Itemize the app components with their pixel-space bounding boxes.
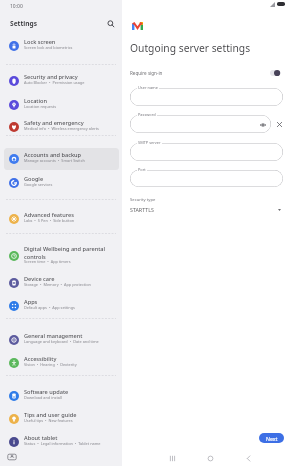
button[interactable]: Show password [258,120,267,129]
staticText: 10:00 [10,3,23,10]
staticText: Port [138,167,146,172]
staticText: Tips and user guide [24,411,77,419]
button[interactable] [130,88,283,106]
button[interactable]: STARTTLS [127,204,289,215]
button[interactable]: Software update [4,385,119,407]
staticText: Digital Wellbeing and parental controls [24,245,106,260]
button[interactable]: General management [4,329,119,351]
button[interactable]: About tablet [4,431,119,453]
staticText: Software update [24,388,69,396]
staticText: SMTP server [138,140,161,145]
staticText: Status • Legal information • Tablet name [24,441,101,446]
button[interactable]: Apps [4,295,119,317]
staticText: Language and keyboard • Date and time [24,339,99,344]
button[interactable]: Clear [274,119,284,129]
button[interactable]: Require sign-in [270,70,280,76]
button[interactable]: Location [4,94,119,116]
button[interactable]: Advanced features [4,208,119,230]
staticText: Screen lock and biometrics [24,45,73,50]
staticText: Screen time • App timers [24,259,71,264]
button[interactable]: Security and privacy [4,70,119,92]
staticText: Useful tips • New features [24,418,73,423]
staticText: Location [24,97,47,105]
staticText: Google [24,175,44,183]
button[interactable]: Accounts and backup [4,148,119,170]
staticText: Password [138,112,156,117]
button[interactable] [130,115,271,133]
button[interactable]: Recent apps [165,451,179,465]
staticText: Lock screen [24,38,56,46]
staticText: General management [24,332,83,340]
staticText: Medical info • Wireless emergency alerts [24,126,99,131]
staticText: Device care [24,275,55,283]
staticText: Location requests [24,104,57,109]
button[interactable]: Accessibility [4,352,119,374]
staticText: Google services [24,182,53,187]
button[interactable]: Device care [4,272,119,294]
button[interactable]: Back [241,451,255,465]
staticText: Apps [24,298,38,306]
staticText: Default apps • App settings [24,305,75,310]
button[interactable]: Tips and user guide [4,408,119,430]
button[interactable]: Profile [6,451,18,463]
staticText: Auto Blocker • Permission usage [24,80,85,85]
staticText: Accounts and backup [24,151,82,159]
staticText: Labs • S Pen • Side button [24,218,75,223]
button[interactable]: Home [203,451,217,465]
staticText: Storage • Memory • App protection [24,282,91,287]
button[interactable]: Require sign-in [127,67,289,79]
staticText: Download and install [24,395,62,400]
staticText: Settings [10,19,38,28]
staticText: Require sign-in [130,70,163,76]
staticText: Safety and emergency [24,119,84,127]
button[interactable]: Search [103,16,118,31]
staticText: Next [266,435,278,442]
staticText: User name [138,85,158,90]
staticText: About tablet [24,434,58,442]
staticText: Manage accounts • Smart Switch [24,158,85,163]
staticText: Security and privacy [24,73,78,81]
staticText: Advanced features [24,211,74,219]
staticText: Accessibility [24,355,57,363]
button[interactable] [130,170,283,187]
button[interactable]: Safety and emergency [4,116,119,138]
staticText: Outgoing server settings [130,41,251,55]
button[interactable]: Google [4,172,119,194]
button[interactable]: Digital Wellbeing and parental controls [4,242,119,270]
button[interactable]: Lock screen [4,35,119,57]
staticText: Security type [130,197,156,203]
button[interactable]: Next [259,433,284,443]
button[interactable] [130,143,283,161]
staticText: STARTTLS [130,206,154,213]
staticText: Vision • Hearing • Dexterity [24,362,77,367]
